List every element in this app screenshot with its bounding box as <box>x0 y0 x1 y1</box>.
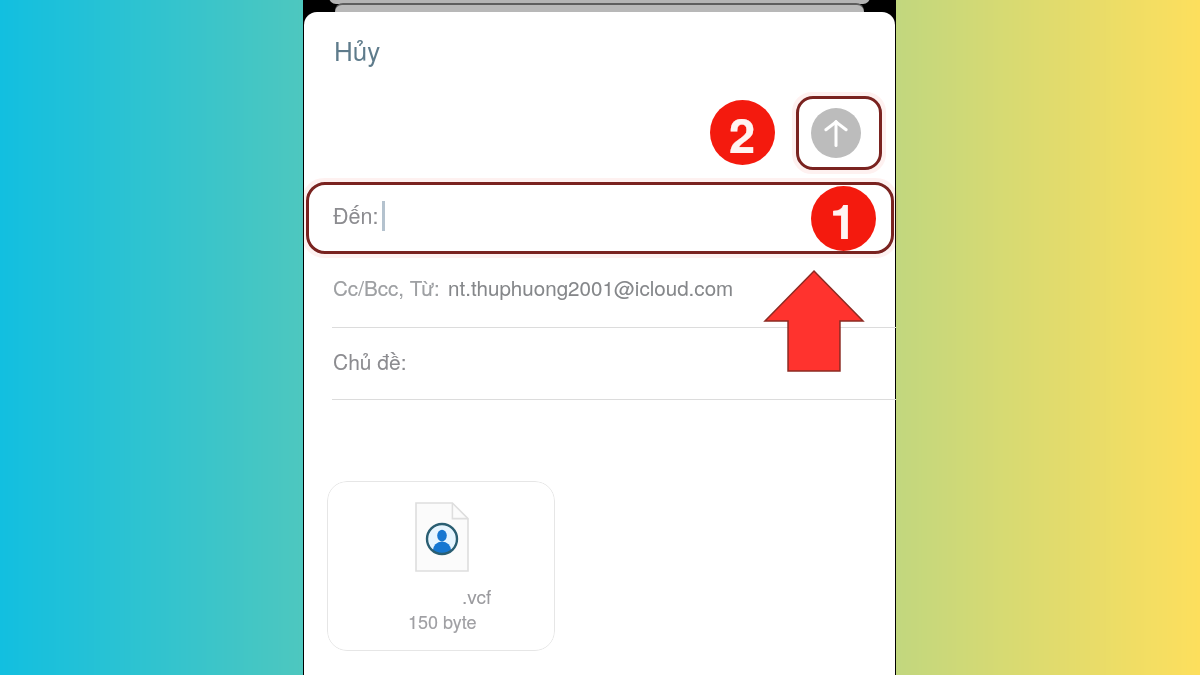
staticText: .vcf <box>462 582 492 609</box>
staticText: Chủ đề: <box>333 346 407 376</box>
button[interactable]: Step 2 <box>710 100 775 165</box>
staticText: Cc/Bcc, Từ: <box>333 272 440 301</box>
button[interactable]: .vcf <box>327 481 555 651</box>
staticText: nt.thuphuong2001@icloud.com <box>448 272 734 301</box>
staticText: 2 <box>729 100 756 165</box>
button[interactable]: Step 1 <box>811 186 876 251</box>
staticText: 150 byte <box>408 608 477 634</box>
button[interactable]: Hủy <box>330 26 385 73</box>
staticText: Hủy <box>334 31 381 68</box>
staticText: 1 <box>830 186 857 251</box>
button[interactable]: Send <box>796 96 882 170</box>
staticText: Đến: <box>333 199 379 230</box>
button[interactable] <box>306 182 894 254</box>
